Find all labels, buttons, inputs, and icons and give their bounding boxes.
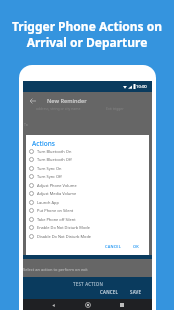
button[interactable]: Put Phone on Silent (26, 206, 149, 214)
staticText: CANCEL (100, 289, 119, 295)
button[interactable]: Turn Bluetooth On (26, 147, 149, 155)
staticText: CANCEL (105, 244, 121, 249)
button[interactable]: Back (48, 300, 58, 310)
button[interactable]: Turn Sync On (26, 164, 149, 172)
button[interactable]: Take Phone off Silent (26, 215, 149, 223)
staticText: TEST ACTION (73, 281, 104, 287)
button[interactable]: Turn Bluetooth Off (26, 155, 149, 163)
button[interactable]: Adjust Phone Volume (26, 181, 149, 189)
staticText: Turn Sync On (37, 166, 62, 171)
button[interactable]: CANCEL (100, 289, 119, 295)
button[interactable]: Recents (117, 300, 127, 310)
button[interactable]: Turn Sync Off (26, 172, 149, 180)
staticText: Exit trigger (106, 106, 124, 111)
button[interactable]: Home (83, 300, 93, 310)
staticText: Adjust Media Volume (37, 191, 77, 196)
button[interactable]: Launch App (26, 198, 149, 206)
staticText: To (24, 122, 28, 127)
button[interactable]: Disable Do Not Disturb Mode (26, 232, 149, 240)
button[interactable]: Enable Do Not Disturb Mode (26, 223, 149, 231)
staticText: Trigger Phone Actions on Arrival or Depa… (0, 18, 174, 50)
staticText: Turn Bluetooth On (37, 149, 72, 154)
staticText: Turn Bluetooth Off (37, 157, 72, 162)
staticText: Adjust Phone Volume (37, 183, 77, 188)
button[interactable]: SAVE (130, 289, 142, 295)
button[interactable]: Back (27, 95, 39, 107)
staticText: Disable Do Not Disturb Mode (37, 234, 92, 239)
staticText: Enable Do Not Disturb Mode (37, 225, 90, 230)
staticText: SAVE (130, 289, 142, 295)
staticText: New Reminder (47, 97, 87, 105)
staticText: Launch App (37, 200, 59, 205)
staticText: Actions (32, 139, 55, 148)
staticText: 10:00 (136, 84, 147, 90)
button[interactable]: Adjust Media Volume (26, 189, 149, 197)
staticText: Select an action to perform on exit (23, 267, 88, 272)
button[interactable]: CANCEL (105, 244, 121, 249)
staticText: Turn Sync Off (37, 174, 62, 179)
button[interactable]: OK (133, 244, 139, 249)
staticText: address, string or city name (36, 106, 81, 111)
button[interactable]: TEST ACTION (73, 281, 104, 287)
staticText: Put Phone on Silent (37, 208, 74, 213)
staticText: OK (133, 244, 139, 249)
staticText: Take Phone off Silent (37, 217, 76, 222)
